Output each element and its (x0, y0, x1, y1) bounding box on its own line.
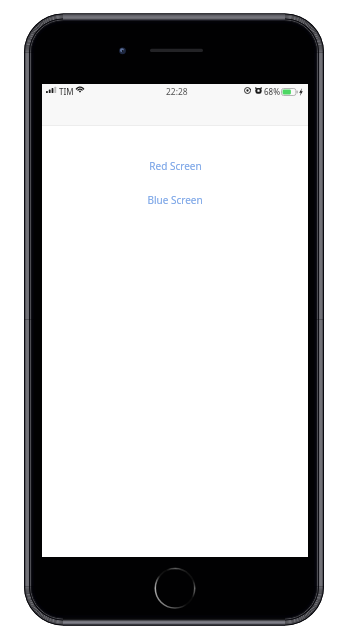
staticText: TIM (59, 86, 74, 97)
button[interactable]: Red Screen (42, 159, 308, 172)
staticText: Blue Screen (147, 193, 203, 206)
staticText: 68% (264, 86, 280, 97)
button[interactable]: Blue Screen (42, 193, 308, 206)
staticText: Red Screen (149, 159, 202, 172)
staticText: 22:28 (166, 86, 188, 98)
